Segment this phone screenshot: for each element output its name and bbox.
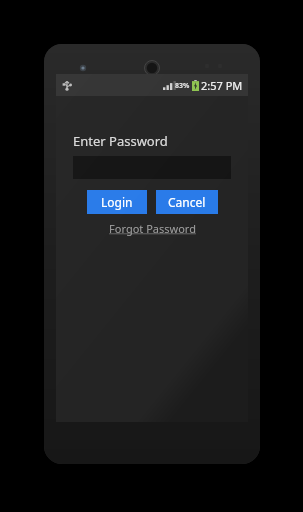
staticText: Cancel [168, 194, 206, 210]
button[interactable]: Forgot Password [105, 220, 200, 237]
staticText: Login [101, 194, 133, 210]
staticText: Enter Password [73, 132, 168, 150]
staticText: 2:57 PM [201, 78, 243, 93]
staticText: 83% [175, 81, 190, 91]
button[interactable]: Login [87, 190, 147, 214]
button[interactable]: Cancel [156, 190, 218, 214]
